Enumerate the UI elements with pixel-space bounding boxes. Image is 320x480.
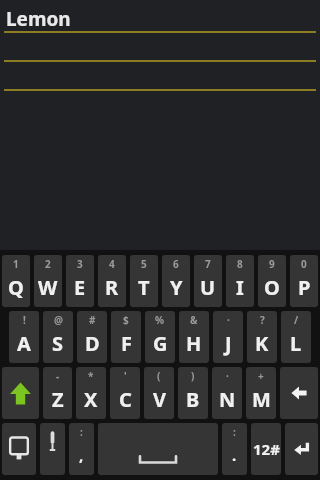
staticText: - <box>56 369 60 383</box>
staticText: R <box>105 274 119 301</box>
button[interactable]: & <box>179 311 209 363</box>
staticText: 6 <box>173 257 179 271</box>
button[interactable]: 2 <box>34 255 62 307</box>
button[interactable]: 3 <box>66 255 94 307</box>
staticText: : <box>233 425 236 439</box>
staticText: W <box>38 274 58 301</box>
staticText: $ <box>123 313 129 327</box>
button[interactable]: Voice input <box>40 423 65 475</box>
staticText: 2 <box>45 257 51 271</box>
button[interactable]: @ <box>43 311 73 363</box>
button[interactable]: ) <box>178 367 208 419</box>
staticText: 3 <box>77 257 83 271</box>
staticText: # <box>89 313 96 327</box>
staticText: P <box>298 274 311 301</box>
staticText: E <box>74 274 86 301</box>
staticText: 0 <box>301 257 307 271</box>
staticText: B <box>186 386 200 413</box>
staticText: 5 <box>141 257 147 271</box>
staticText: G <box>153 330 168 357</box>
staticText: % <box>155 313 165 327</box>
button[interactable]: · <box>212 367 242 419</box>
staticText: Z <box>52 386 64 413</box>
button[interactable]: - <box>43 367 72 419</box>
staticText: K <box>255 330 269 357</box>
button[interactable]: + <box>246 367 276 419</box>
staticText: T <box>138 274 150 301</box>
button[interactable]: ! <box>9 311 39 363</box>
staticText: 7 <box>205 257 211 271</box>
button[interactable]: / <box>281 311 311 363</box>
staticText: F <box>121 330 132 357</box>
staticText: V <box>153 386 166 413</box>
staticText: S <box>52 330 64 357</box>
staticText: A <box>17 330 31 357</box>
staticText: M <box>252 386 271 413</box>
staticText: ' <box>124 369 127 383</box>
staticText: Y <box>170 274 183 301</box>
staticText: ? <box>260 313 265 327</box>
button[interactable]: Switch keyboard <box>2 423 36 475</box>
staticText: ( <box>157 369 161 383</box>
staticText: H <box>186 330 202 357</box>
staticText: @ <box>54 313 63 327</box>
staticText: & <box>190 313 198 327</box>
button[interactable]: · <box>213 311 243 363</box>
button[interactable]: 1 <box>2 255 30 307</box>
staticText: 1 <box>13 257 19 271</box>
staticText: . <box>232 445 237 465</box>
button[interactable]: 0 <box>290 255 318 307</box>
button[interactable]: Enter <box>285 423 318 475</box>
staticText: , <box>79 445 84 465</box>
staticText: ) <box>191 369 195 383</box>
staticText: Q <box>8 274 24 301</box>
staticText: : <box>80 425 83 439</box>
staticText: · <box>226 369 229 383</box>
button[interactable]: 9 <box>258 255 286 307</box>
staticText: * <box>88 369 94 383</box>
button[interactable]: ' <box>110 367 140 419</box>
staticText: 12# <box>253 439 280 459</box>
button[interactable]: Space <box>98 423 218 475</box>
staticText: 4 <box>109 257 115 271</box>
staticText: Lemon <box>6 6 71 32</box>
button[interactable]: 12# <box>251 423 281 475</box>
button[interactable]: $ <box>111 311 141 363</box>
button[interactable]: 6 <box>162 255 190 307</box>
staticText: J <box>225 330 232 357</box>
button[interactable]: : <box>69 423 94 475</box>
button[interactable]: # <box>77 311 107 363</box>
button[interactable]: : <box>222 423 247 475</box>
staticText: 8 <box>237 257 243 271</box>
button[interactable]: Backspace <box>280 367 318 419</box>
button[interactable]: ? <box>247 311 277 363</box>
staticText: N <box>219 386 236 413</box>
staticText: 9 <box>269 257 275 271</box>
staticText: / <box>294 313 299 327</box>
staticText: D <box>85 330 100 357</box>
staticText: O <box>264 274 280 301</box>
button[interactable]: % <box>145 311 175 363</box>
button[interactable]: ( <box>144 367 174 419</box>
staticText: ! <box>23 313 26 327</box>
button[interactable]: * <box>76 367 106 419</box>
button[interactable]: 7 <box>194 255 222 307</box>
staticText: C <box>119 386 132 413</box>
staticText: X <box>84 386 98 413</box>
staticText: L <box>290 330 302 357</box>
staticText: I <box>236 274 244 301</box>
button[interactable]: 4 <box>98 255 126 307</box>
staticText: + <box>258 369 264 383</box>
button[interactable]: 8 <box>226 255 254 307</box>
staticText: · <box>227 313 230 327</box>
button[interactable]: 5 <box>130 255 158 307</box>
button[interactable]: Shift <box>2 367 39 419</box>
staticText: U <box>200 274 216 301</box>
